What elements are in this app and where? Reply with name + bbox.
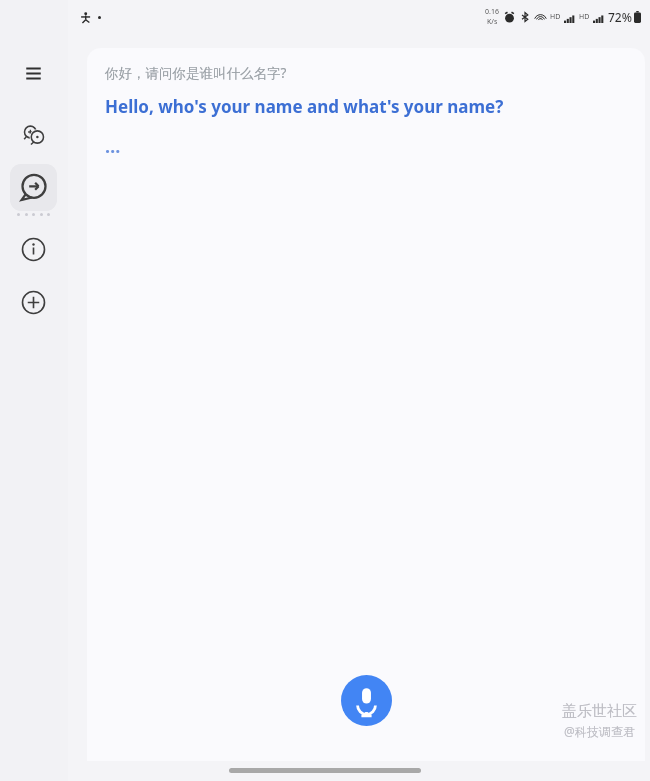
staticText: HD [550,12,561,22]
staticText: 你好，请问你是谁叫什么名字? [105,64,287,82]
staticText: HD [579,12,590,22]
button[interactable]: Translate chat [10,164,57,211]
button[interactable]: Voice input [341,675,392,726]
staticText: … [105,134,121,159]
button[interactable]: Menu [10,50,57,97]
staticText: 0.16 [485,7,499,17]
staticText: 盖乐世社区 [562,702,637,721]
button[interactable]: Add [10,279,57,326]
staticText: @科技调查君 [564,723,635,739]
staticText: K/s [487,17,498,27]
button[interactable]: Information [10,226,57,273]
button[interactable]: New chat [10,111,57,158]
staticText: 72% [608,9,632,25]
staticText: Hello, who's your name and what's your n… [105,95,504,118]
